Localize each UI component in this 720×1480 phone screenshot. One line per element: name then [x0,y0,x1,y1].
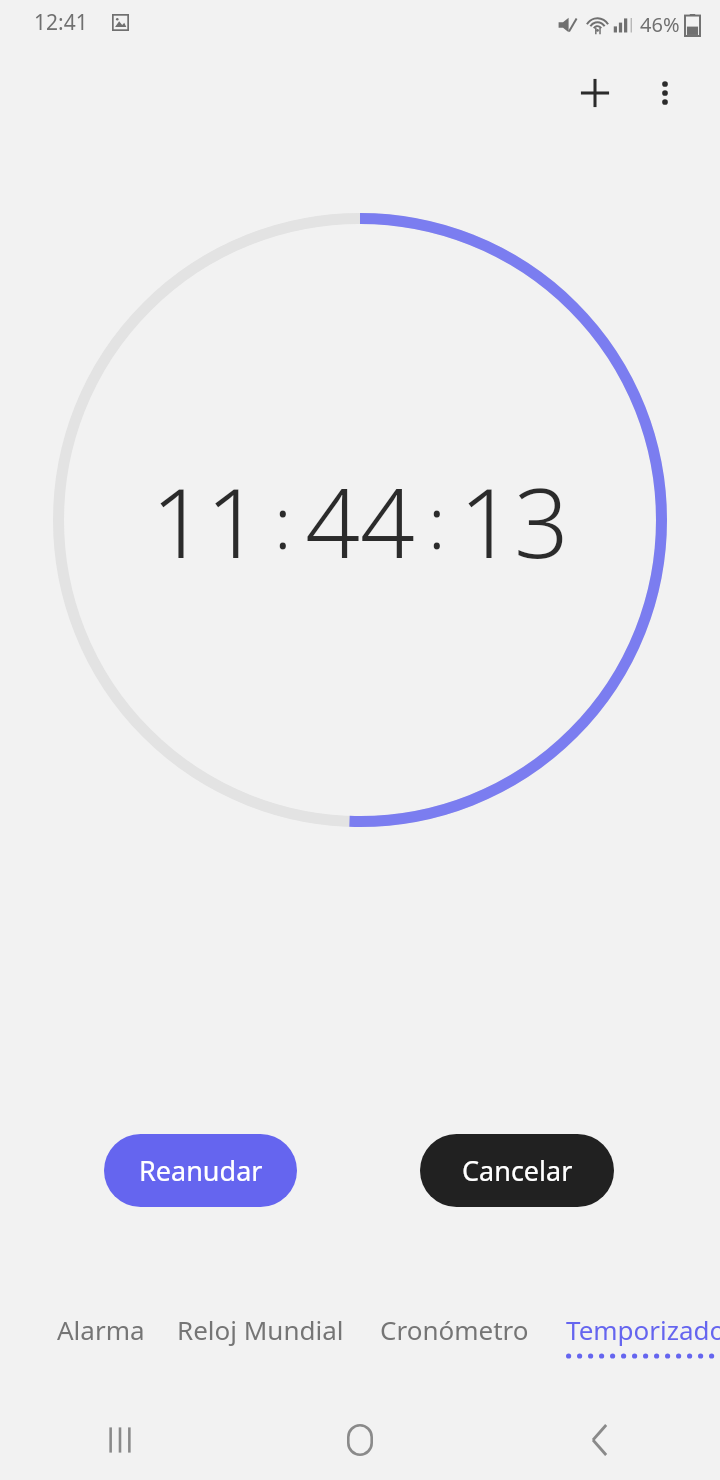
button[interactable]: Temporizador [566,1312,720,1374]
button[interactable]: Cancelar [420,1134,614,1207]
button[interactable]: Cronómetro [380,1312,529,1374]
button[interactable]: Reanudar [104,1134,297,1207]
staticText: Reanudar [139,1152,263,1189]
button[interactable]: Back [480,1400,720,1480]
staticText: 46% [640,11,680,38]
staticText: Cronómetro [380,1312,529,1347]
staticText: 44 [305,455,415,586]
button[interactable]: Add timer [560,58,630,128]
staticText: Reloj Mundial [177,1312,344,1347]
button[interactable]: Home [240,1400,480,1480]
button[interactable]: Reloj Mundial [177,1312,344,1374]
button[interactable]: Recents [0,1400,240,1480]
staticText: 11 [151,455,261,586]
staticText: Cancelar [462,1152,573,1189]
button[interactable]: More options [630,58,700,128]
staticText: 13 [459,455,569,586]
staticText: 12:41 [34,8,88,37]
staticText: : [274,472,292,570]
button[interactable]: Alarma [57,1312,145,1374]
staticText: Temporizador [566,1312,720,1347]
staticText: : [428,472,446,570]
staticText: Alarma [57,1312,145,1347]
